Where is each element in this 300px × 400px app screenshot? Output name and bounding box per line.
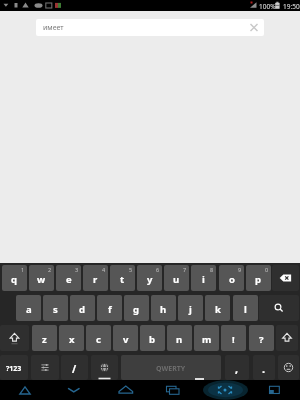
- staticText: c: [96, 333, 101, 346]
- staticText: k: [215, 303, 221, 316]
- staticText: f: [108, 303, 112, 316]
- staticText: 2: [48, 266, 52, 273]
- button[interactable]: x: [59, 325, 84, 351]
- staticText: i: [202, 273, 205, 286]
- staticText: ,: [235, 361, 239, 376]
- staticText: q: [11, 273, 18, 286]
- button[interactable]: .: [253, 355, 275, 380]
- button[interactable]: [247, 19, 264, 36]
- staticText: 100%: [259, 2, 276, 11]
- staticText: .: [262, 361, 266, 376]
- staticText: 3: [75, 266, 79, 273]
- button[interactable]: [91, 355, 118, 380]
- button[interactable]: r: [83, 265, 108, 291]
- staticText: 1: [21, 266, 25, 273]
- staticText: l: [244, 303, 247, 316]
- button[interactable]: j: [178, 295, 203, 321]
- button[interactable]: ,: [225, 355, 249, 380]
- staticText: d: [79, 303, 86, 316]
- button[interactable]: [272, 265, 299, 291]
- button[interactable]: k: [205, 295, 230, 321]
- button[interactable]: o: [219, 265, 244, 291]
- button[interactable]: [0, 325, 29, 351]
- staticText: u: [173, 273, 180, 286]
- staticText: 5: [129, 266, 133, 273]
- staticText: QWERTY: [156, 364, 186, 374]
- button[interactable]: ?123: [0, 355, 28, 380]
- button[interactable]: ?: [249, 325, 274, 351]
- button[interactable]: u: [164, 265, 189, 291]
- staticText: b: [149, 333, 156, 346]
- staticText: ?: [259, 333, 264, 346]
- staticText: имеет: [43, 23, 64, 33]
- button[interactable]: h: [151, 295, 176, 321]
- button[interactable]: [50, 380, 100, 400]
- button[interactable]: !: [221, 325, 246, 351]
- button[interactable]: c: [86, 325, 111, 351]
- staticText: 7: [183, 266, 187, 273]
- staticText: g: [133, 303, 140, 316]
- button[interactable]: f: [97, 295, 122, 321]
- staticText: z: [42, 333, 47, 346]
- button[interactable]: [31, 355, 59, 380]
- button[interactable]: QWERTY: [121, 355, 221, 380]
- button[interactable]: [150, 380, 200, 400]
- button[interactable]: p: [246, 265, 271, 291]
- button[interactable]: [276, 325, 298, 351]
- button[interactable]: w: [29, 265, 54, 291]
- staticText: 9: [238, 266, 242, 273]
- staticText: t: [120, 273, 125, 286]
- button[interactable]: b: [140, 325, 165, 351]
- staticText: !: [232, 333, 235, 346]
- button[interactable]: i: [191, 265, 216, 291]
- button[interactable]: l: [233, 295, 258, 321]
- staticText: /: [72, 362, 77, 376]
- staticText: n: [176, 333, 183, 346]
- staticText: 6: [156, 266, 160, 273]
- button[interactable]: [200, 380, 250, 400]
- staticText: r: [93, 273, 98, 286]
- staticText: h: [160, 303, 167, 316]
- staticText: s: [53, 303, 58, 316]
- staticText: ?123: [6, 364, 22, 374]
- button[interactable]: [250, 380, 300, 400]
- button[interactable]: m: [194, 325, 219, 351]
- staticText: 8: [210, 266, 214, 273]
- staticText: p: [255, 273, 262, 286]
- button[interactable]: a: [16, 295, 41, 321]
- button[interactable]: [100, 380, 150, 400]
- staticText: 0: [265, 266, 269, 273]
- staticText: w: [37, 273, 46, 286]
- button[interactable]: e: [56, 265, 81, 291]
- staticText: 4: [102, 266, 106, 273]
- staticText: e: [66, 273, 72, 286]
- button[interactable]: g: [124, 295, 149, 321]
- button[interactable]: s: [43, 295, 68, 321]
- staticText: m: [202, 333, 212, 346]
- button[interactable]: [259, 295, 299, 321]
- button[interactable]: n: [167, 325, 192, 351]
- staticText: j: [189, 303, 192, 316]
- button[interactable]: /: [61, 355, 88, 380]
- button[interactable]: d: [70, 295, 95, 321]
- button[interactable]: [278, 355, 299, 380]
- button[interactable]: z: [32, 325, 57, 351]
- staticText: 19:50: [283, 2, 300, 11]
- staticText: a: [26, 303, 32, 316]
- button[interactable]: [0, 380, 50, 400]
- button[interactable]: имеет: [36, 19, 264, 36]
- button[interactable]: y: [137, 265, 162, 291]
- staticText: v: [123, 333, 129, 346]
- button[interactable]: t: [110, 265, 135, 291]
- staticText: y: [147, 273, 153, 286]
- staticText: o: [229, 273, 235, 286]
- button[interactable]: v: [113, 325, 138, 351]
- staticText: x: [69, 333, 75, 346]
- button[interactable]: q: [2, 265, 27, 291]
